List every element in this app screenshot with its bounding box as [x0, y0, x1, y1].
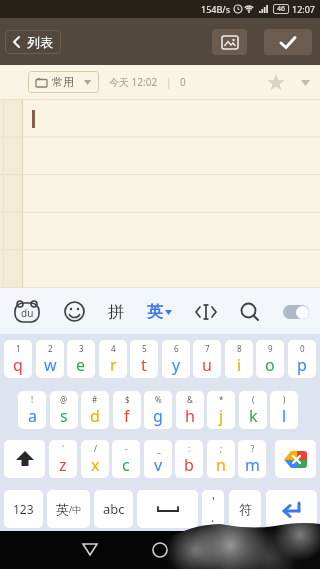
staticText: v	[154, 454, 163, 476]
button[interactable]: 7	[193, 340, 221, 378]
button[interactable]	[212, 29, 247, 55]
staticText: $	[125, 394, 130, 405]
button[interactable]: ;	[207, 440, 235, 478]
staticText: a	[28, 405, 37, 427]
button[interactable]: %	[144, 391, 172, 429]
button[interactable]: 英	[47, 490, 90, 528]
staticText: i	[237, 354, 242, 376]
button[interactable]: #	[81, 391, 109, 429]
button[interactable]: @	[50, 391, 78, 429]
button[interactable]: 5	[130, 340, 158, 378]
button[interactable]	[266, 490, 317, 528]
button[interactable]: 3	[67, 340, 95, 378]
staticText: 5	[142, 343, 147, 354]
button[interactable]: 9	[256, 340, 284, 378]
staticText: 0	[180, 75, 186, 89]
staticText: 常用	[52, 75, 74, 89]
staticText: abc	[103, 500, 125, 518]
staticText: |	[166, 75, 172, 89]
button[interactable]: 8	[225, 340, 253, 378]
button[interactable]: 0	[288, 340, 316, 378]
button[interactable]: &	[176, 391, 204, 429]
button[interactable]: 常用	[28, 71, 99, 93]
button[interactable]	[267, 74, 285, 91]
staticText: 4	[111, 343, 116, 354]
button[interactable]: *	[207, 391, 235, 429]
button[interactable]: (	[239, 391, 267, 429]
staticText: *	[219, 394, 224, 405]
staticText: 符	[239, 501, 252, 517]
button[interactable]	[82, 543, 98, 557]
staticText: )	[283, 394, 286, 405]
button[interactable]: 123	[4, 490, 43, 528]
staticText: y	[172, 354, 181, 376]
staticText: ?	[251, 443, 255, 454]
button[interactable]: 列表	[5, 30, 61, 54]
button[interactable]: -	[112, 440, 140, 478]
staticText: 123	[13, 501, 34, 517]
button[interactable]: /	[81, 440, 109, 478]
staticText: q	[13, 354, 23, 376]
button[interactable]: 符	[229, 490, 261, 528]
staticText: w	[44, 354, 57, 376]
staticText: .	[211, 509, 215, 525]
staticText: %	[155, 394, 162, 405]
staticText: #	[92, 394, 98, 405]
staticText: 英	[56, 501, 69, 517]
button[interactable]	[195, 303, 217, 321]
staticText: 9	[268, 343, 273, 354]
button[interactable]: 6	[162, 340, 190, 378]
button[interactable]: '	[49, 440, 77, 478]
button[interactable]: ?	[238, 440, 266, 478]
staticText: o	[265, 354, 275, 376]
button[interactable]	[264, 29, 312, 55]
staticText: /中	[69, 503, 82, 515]
staticText: h	[185, 405, 195, 427]
button[interactable]	[137, 490, 198, 528]
staticText: j	[219, 405, 224, 427]
button[interactable]: 拼	[108, 302, 124, 322]
button[interactable]	[240, 302, 260, 322]
staticText: 12:07	[292, 3, 316, 15]
button[interactable]: !	[18, 391, 46, 429]
button[interactable]	[301, 80, 310, 86]
button[interactable]: 英	[147, 302, 172, 322]
staticText: (	[252, 394, 255, 405]
button[interactable]	[4, 440, 45, 478]
button[interactable]: 2	[36, 340, 64, 378]
button[interactable]: _	[144, 440, 172, 478]
button[interactable]: 4	[99, 340, 127, 378]
staticText: 154B/s	[201, 3, 230, 15]
staticText: ;	[220, 443, 223, 454]
button[interactable]	[64, 301, 85, 322]
button[interactable]: :	[175, 440, 203, 478]
staticText: 8	[237, 343, 242, 354]
staticText: u	[202, 354, 212, 376]
staticText: p	[297, 354, 307, 376]
staticText: &	[187, 394, 193, 405]
button[interactable]: 1	[4, 340, 32, 378]
button[interactable]	[152, 542, 168, 558]
staticText: k	[249, 405, 258, 427]
staticText: 0	[300, 343, 305, 354]
staticText: f	[124, 405, 130, 427]
staticText: x	[91, 454, 100, 476]
button[interactable]	[283, 305, 309, 319]
staticText: 2	[48, 343, 53, 354]
staticText: e	[76, 354, 86, 376]
staticText: r	[110, 354, 117, 376]
button[interactable]	[275, 440, 316, 478]
button[interactable]: $	[113, 391, 141, 429]
button[interactable]: '	[202, 490, 224, 528]
staticText: 英	[147, 302, 163, 322]
staticText: 列表	[27, 34, 53, 50]
staticText: @	[60, 394, 68, 405]
staticText: 3	[79, 343, 84, 354]
button[interactable]: abc	[94, 490, 133, 528]
staticText: 7	[205, 343, 210, 354]
staticText: :	[188, 443, 191, 454]
staticText: '	[62, 443, 64, 454]
button[interactable]: )	[270, 391, 298, 429]
staticText: n	[216, 454, 226, 476]
button[interactable]: du	[14, 299, 40, 323]
